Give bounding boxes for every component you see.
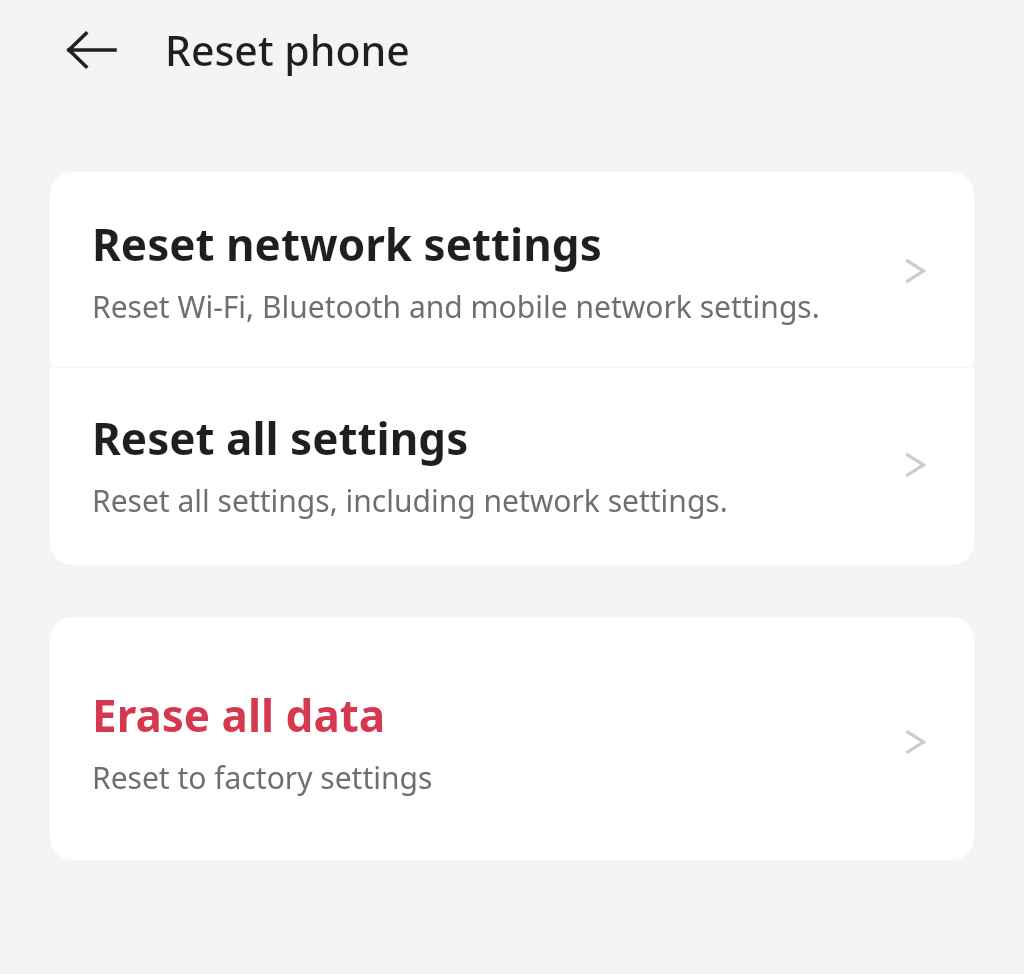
button[interactable]: Reset all settings <box>50 368 974 565</box>
staticText: Erase all data <box>92 685 386 745</box>
staticText: Reset Wi-Fi, Bluetooth and mobile networ… <box>92 286 820 327</box>
staticText: Reset to factory settings <box>92 757 433 798</box>
button[interactable]: Reset network settings <box>50 172 974 367</box>
staticText: Reset phone <box>165 22 410 78</box>
staticText: Reset all settings <box>92 408 469 468</box>
button[interactable]: Erase all data <box>50 617 974 860</box>
button[interactable]: Back <box>46 4 138 96</box>
staticText: Reset all settings, including network se… <box>92 480 728 521</box>
staticText: Reset network settings <box>92 214 602 274</box>
